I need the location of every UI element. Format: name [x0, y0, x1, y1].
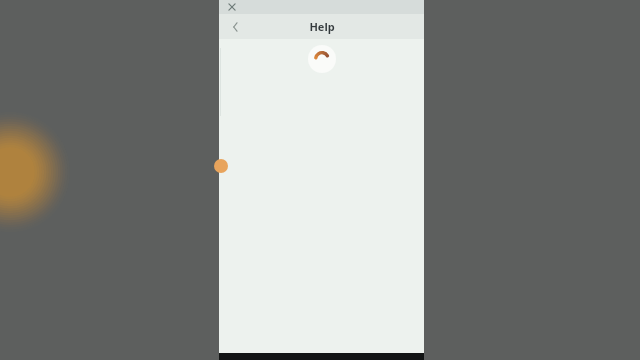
- staticText: Help: [309, 19, 335, 34]
- button[interactable]: Back: [228, 19, 244, 35]
- other: Loading: [308, 45, 336, 73]
- button[interactable]: Close: [225, 0, 239, 14]
